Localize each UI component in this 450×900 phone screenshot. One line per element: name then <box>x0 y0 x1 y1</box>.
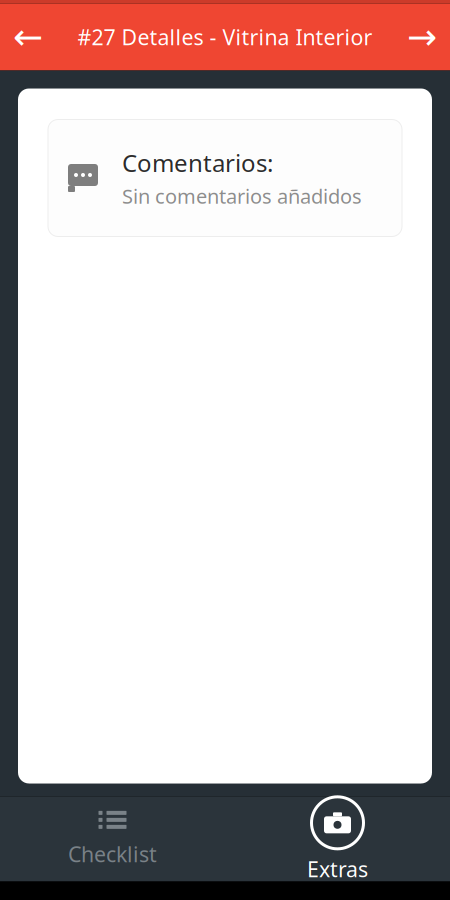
staticText: Sin comentarios añadidos <box>122 183 362 209</box>
staticText: Comentarios: <box>122 147 273 179</box>
staticText: Checklist <box>68 840 157 868</box>
staticText: #27 Detalles - Vitrina Interior <box>77 23 372 51</box>
button[interactable]: Back <box>0 3 56 70</box>
button[interactable]: Next <box>394 3 450 70</box>
staticText: ← <box>13 17 43 57</box>
button[interactable]: Comentarios: <box>48 119 402 236</box>
staticText: Extras <box>307 855 368 883</box>
button[interactable]: Checklist <box>0 796 225 881</box>
button[interactable]: Extras <box>225 796 450 881</box>
staticText: → <box>407 17 437 57</box>
